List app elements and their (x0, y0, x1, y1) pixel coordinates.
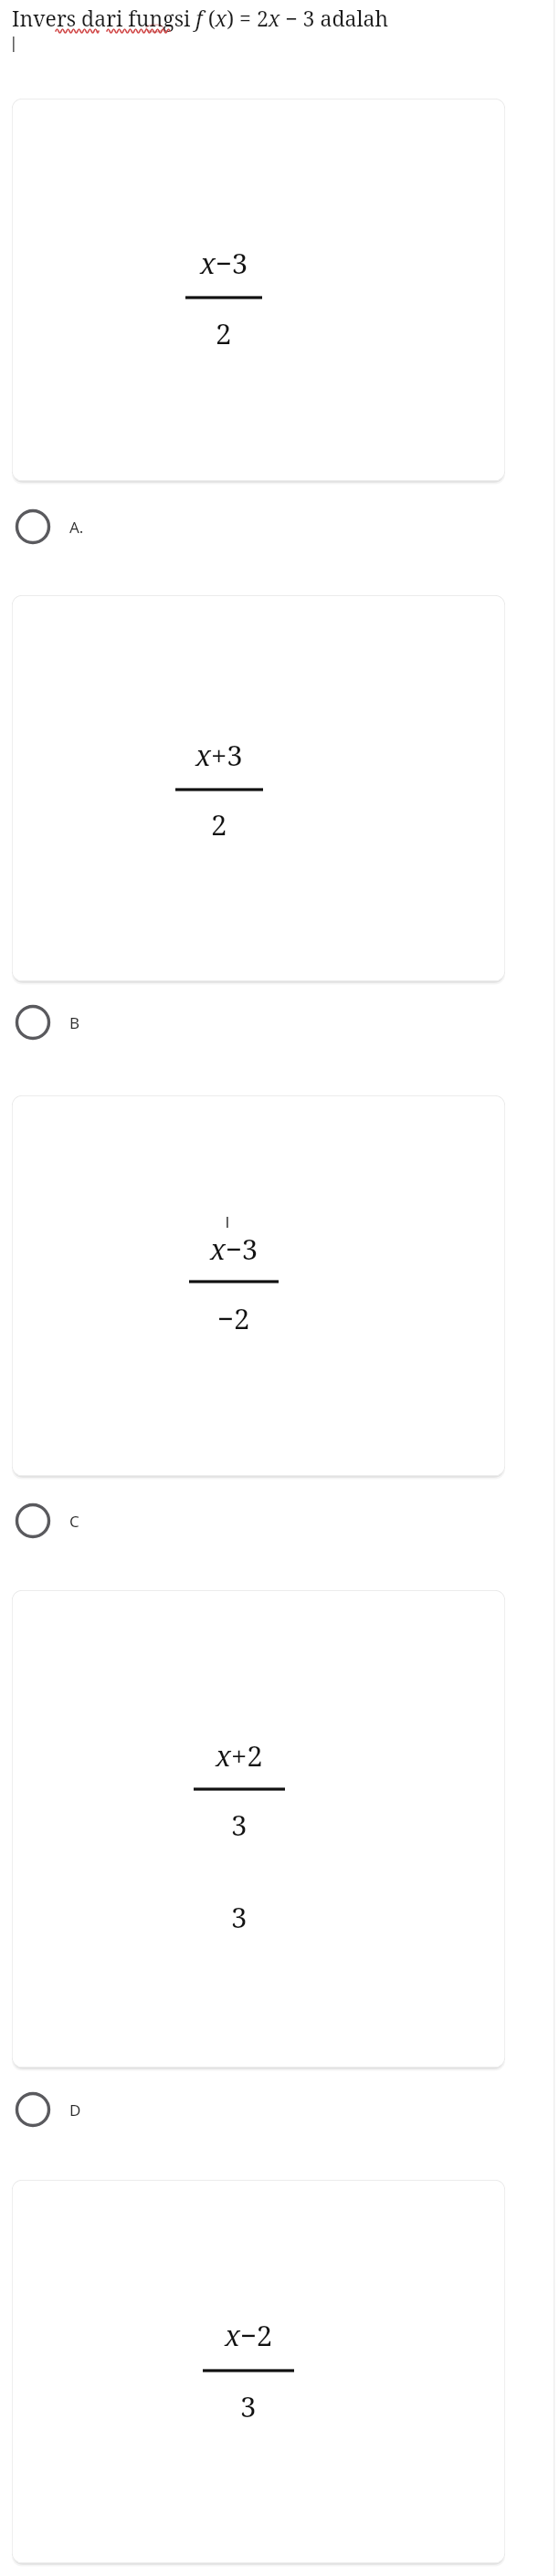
button[interactable]: Option B (5, 997, 243, 1048)
staticText: D (69, 2100, 81, 2120)
staticText: C (69, 1511, 79, 1532)
button[interactable]: Option C (5, 1495, 243, 1546)
button[interactable]: Option D (5, 2084, 243, 2135)
button[interactable]: Option A. (5, 501, 243, 552)
staticText: x−3 (210, 1230, 258, 1268)
button[interactable]: x−2 (12, 2180, 505, 2563)
button[interactable]: x−3 (12, 1095, 505, 1476)
staticText: x+3 (195, 736, 243, 774)
staticText: 3 (240, 2387, 257, 2425)
button[interactable]: x+3 (12, 595, 505, 981)
staticText: x−3 (200, 244, 248, 282)
button[interactable]: x−3 (12, 99, 505, 481)
button[interactable]: x+2 (12, 1590, 505, 2068)
staticText: 2 (216, 314, 232, 352)
staticText: 3 (231, 1898, 248, 1936)
staticText: A. (69, 517, 84, 538)
staticText: 3 (231, 1806, 248, 1844)
staticText: −2 (217, 1299, 250, 1337)
staticText: B (69, 1012, 80, 1033)
staticText: Invers dari fungsi f (x) = 2x − 3 adalah (12, 4, 389, 32)
staticText: x+2 (216, 1736, 263, 1775)
staticText: 2 (211, 805, 227, 843)
staticText: x−2 (225, 2316, 273, 2354)
